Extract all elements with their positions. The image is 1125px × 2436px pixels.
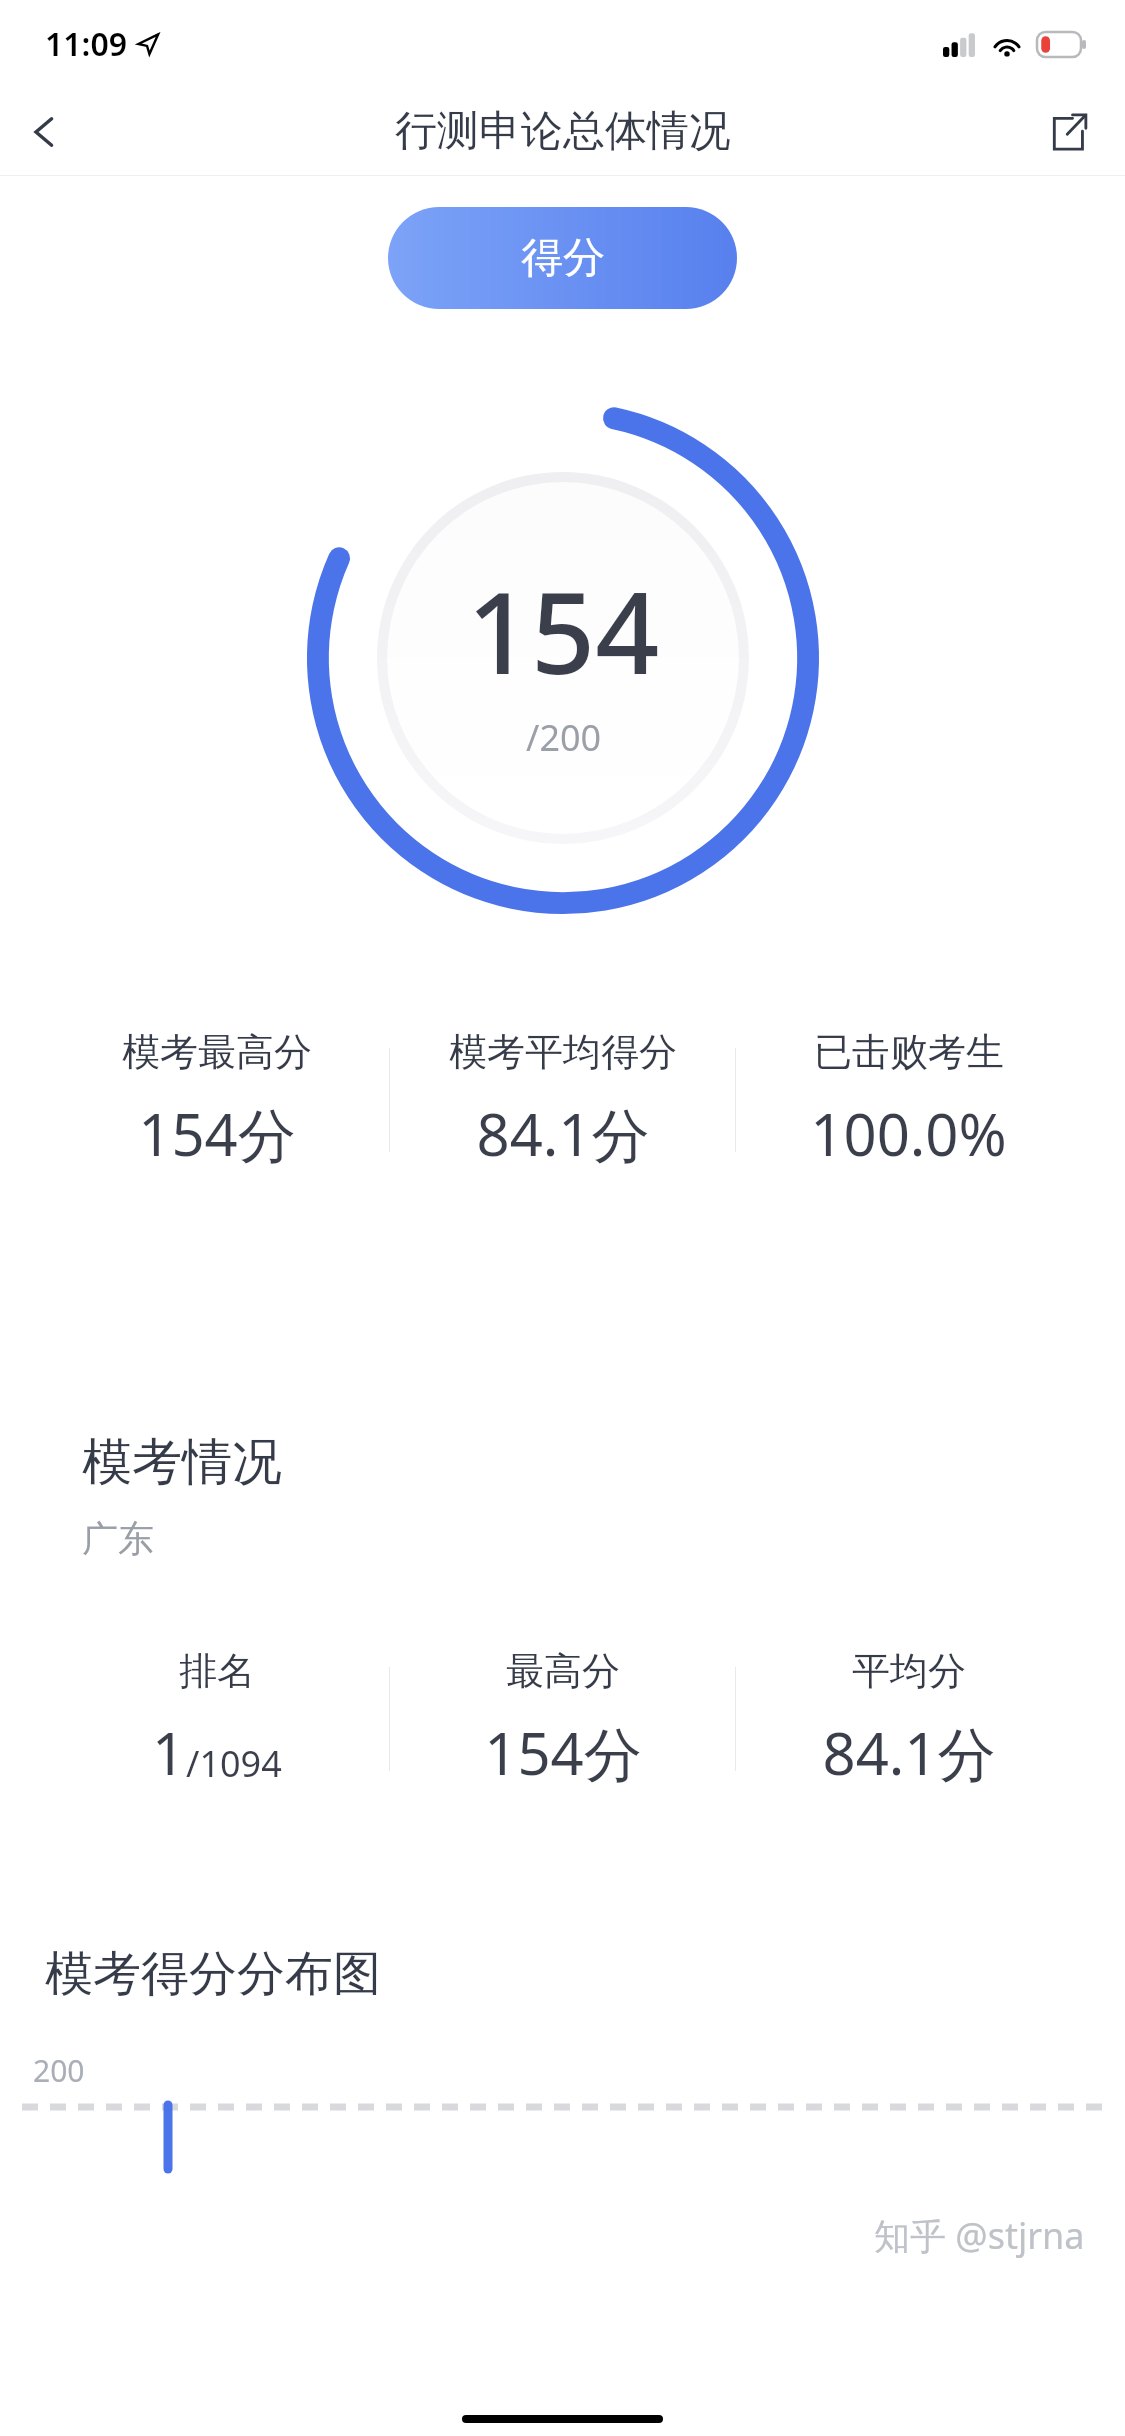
staticText: 154分 (138, 1094, 296, 1173)
staticText: 最高分 (506, 1647, 620, 1695)
staticText: /1094 (186, 1739, 282, 1788)
button[interactable]: 已击败考生 (736, 1028, 1081, 1173)
button[interactable]: 模考平均得分 (390, 1028, 735, 1173)
staticText: 84.1分 (822, 1713, 996, 1792)
staticText: 知乎 @stjrna (874, 2211, 1085, 2260)
button[interactable]: Share (1033, 97, 1103, 167)
staticText: 排名 (179, 1647, 255, 1695)
staticText: /200 (526, 713, 602, 762)
staticText: 模考最高分 (122, 1028, 312, 1076)
staticText: 154 (467, 554, 660, 707)
staticText: 1 (152, 1713, 186, 1792)
staticText: 模考得分分布图 (45, 1944, 381, 2004)
staticText: 154分 (484, 1713, 642, 1792)
button[interactable]: 平均分 (736, 1647, 1081, 1792)
staticText: 已击败考生 (814, 1028, 1004, 1076)
staticText: 行测申论总体情况 (395, 105, 731, 158)
staticText: 得分 (521, 232, 605, 285)
staticText: 模考情况 (82, 1431, 282, 1494)
staticText: 84.1分 (476, 1094, 650, 1173)
staticText: 200 (33, 2050, 85, 2091)
staticText: 平均分 (852, 1647, 966, 1695)
button[interactable]: 排名 (44, 1647, 389, 1792)
staticText: 模考平均得分 (449, 1028, 677, 1076)
button[interactable]: 最高分 (390, 1647, 735, 1792)
staticText: 11:09 (45, 22, 128, 66)
button[interactable]: 得分 (388, 207, 737, 309)
button[interactable]: Back (10, 97, 80, 167)
staticText: 广东 (82, 1516, 154, 1561)
button[interactable]: 模考最高分 (44, 1028, 389, 1173)
staticText: 100.0% (810, 1094, 1007, 1173)
